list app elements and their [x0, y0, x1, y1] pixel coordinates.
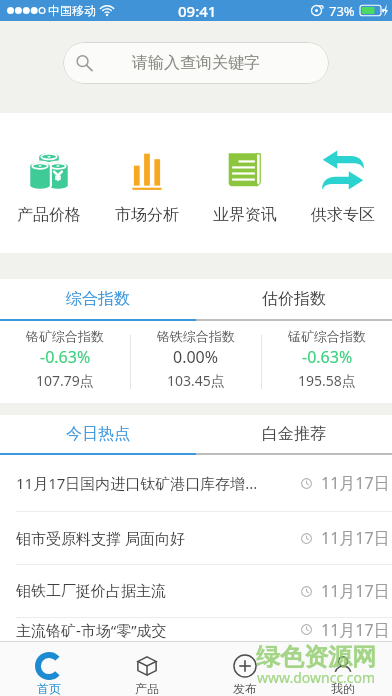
staticText: 产品价格 — [17, 205, 81, 225]
staticText: 103.45点 — [167, 371, 225, 390]
button[interactable]: Profile — [294, 642, 392, 696]
button[interactable]: 白金推荐 — [196, 415, 392, 453]
staticText: 供求专区 — [311, 205, 375, 225]
staticText: -0.63% — [302, 346, 353, 368]
staticText: 产品 — [135, 681, 159, 696]
button[interactable]: Publish — [196, 642, 294, 696]
staticText: 107.79点 — [36, 371, 94, 390]
staticText: 主流铬矿-市场“零”成交 — [16, 620, 282, 640]
staticText: 195.58点 — [298, 371, 356, 390]
button[interactable]: 市场分析 — [98, 147, 196, 225]
button[interactable]: 供求专区 — [294, 147, 392, 225]
button[interactable]: Home — [0, 642, 98, 696]
button[interactable]: 锰矿综合指数 — [262, 321, 392, 403]
button[interactable]: 钼市受原料支撑 局面向好 — [0, 512, 392, 564]
staticText: 首页 — [37, 681, 61, 696]
button[interactable]: 请输入查询关键字 — [63, 42, 329, 84]
staticText: 11月17日 — [321, 527, 390, 549]
button[interactable]: 铬矿综合指数 — [0, 321, 130, 403]
staticText: 09:41 — [178, 1, 217, 21]
staticText: 钼铁工厂挺价占据主流 — [16, 582, 282, 601]
staticText: 钼市受原料支撑 局面向好 — [16, 528, 282, 548]
staticText: 综合指数 — [66, 289, 130, 309]
staticText: 估价指数 — [262, 289, 326, 309]
staticText: 市场分析 — [115, 205, 179, 225]
button[interactable]: 业界资讯 — [196, 147, 294, 225]
staticText: 今日热点 — [66, 424, 130, 444]
staticText: 绿色资源网 — [256, 642, 376, 672]
staticText: 11月17日 — [321, 472, 390, 494]
staticText: 请输入查询关键字 — [132, 53, 260, 73]
staticText: 我的 — [331, 681, 355, 696]
staticText: 铬矿综合指数 — [26, 328, 104, 344]
staticText: 业界资讯 — [213, 205, 277, 225]
button[interactable]: Products — [98, 642, 196, 696]
staticText: 11月17日国内进口钛矿港口库存增... — [16, 473, 282, 493]
button[interactable]: 今日热点 — [0, 415, 196, 453]
button[interactable]: 估价指数 — [196, 279, 392, 319]
button[interactable]: 11月17日国内进口钛矿港口库存增... — [0, 455, 392, 511]
button[interactable]: 主流铬矿-市场“零”成交 — [0, 618, 392, 641]
staticText: www.downcc.com — [257, 668, 376, 687]
staticText: 11月17日 — [321, 580, 390, 602]
staticText: 中国移动 — [48, 3, 96, 18]
button[interactable]: 产品价格 — [0, 147, 98, 225]
staticText: 11月17日 — [321, 619, 390, 641]
staticText: 白金推荐 — [262, 424, 326, 444]
button[interactable]: 钼铁工厂挺价占据主流 — [0, 565, 392, 617]
staticText: 铬铁综合指数 — [157, 328, 235, 344]
button[interactable]: 综合指数 — [0, 279, 196, 319]
staticText: 发布 — [233, 681, 257, 696]
button[interactable]: 铬铁综合指数 — [131, 321, 261, 403]
staticText: 73% — [329, 2, 355, 20]
staticText: -0.63% — [40, 346, 91, 368]
staticText: 锰矿综合指数 — [288, 328, 366, 344]
staticText: 0.00% — [173, 346, 219, 368]
